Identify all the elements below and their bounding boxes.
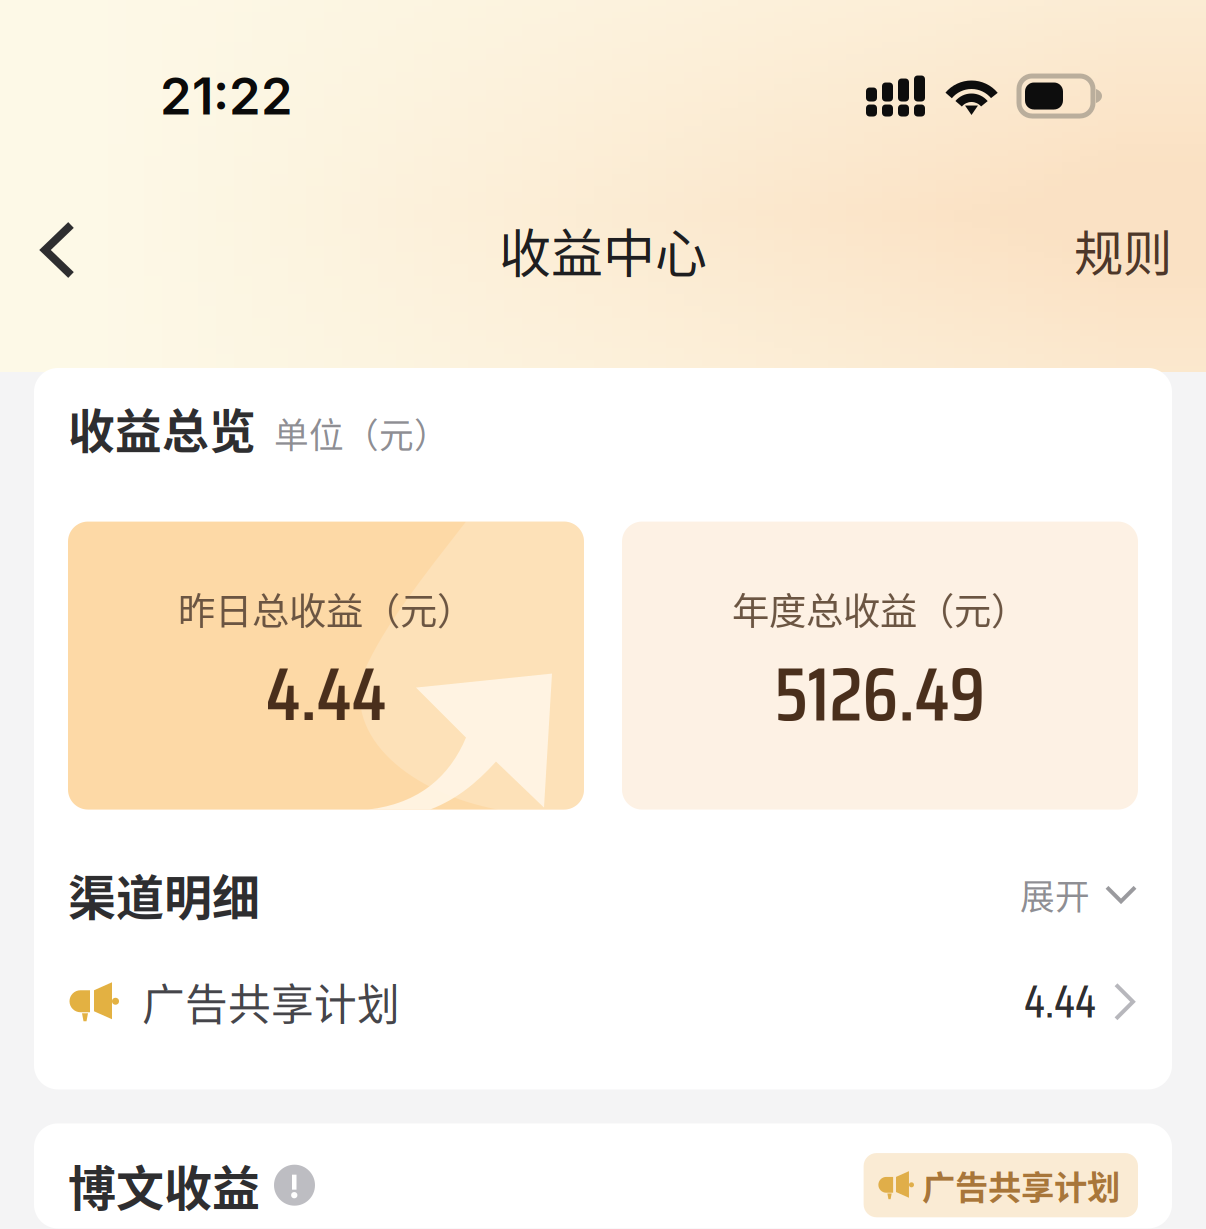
staticText: 规则	[1074, 214, 1172, 286]
staticText: 单位（元）	[274, 408, 449, 458]
staticText: 展开	[1020, 869, 1090, 919]
staticText: 4.44	[265, 636, 386, 753]
button[interactable]: 广告共享计划	[864, 1153, 1138, 1217]
button[interactable]: 广告共享计划	[34, 966, 1172, 1037]
staticText: 21:22	[160, 65, 293, 127]
staticText: 5126.49	[774, 636, 985, 753]
button[interactable]: 规则	[1032, 207, 1172, 293]
staticText: 年度总收益（元）	[732, 582, 1028, 636]
button[interactable]: Back	[6, 207, 110, 293]
staticText: 4.44	[1024, 966, 1096, 1037]
staticText: 广告共享计划	[142, 971, 400, 1033]
staticText: 收益中心	[499, 212, 707, 288]
staticText: 昨日总收益（元）	[178, 582, 474, 636]
staticText: 博文收益	[68, 1150, 260, 1220]
staticText: 渠道明细	[68, 860, 260, 929]
staticText: 收益总览	[68, 394, 256, 462]
button[interactable]: 渠道明细	[34, 860, 1172, 929]
staticText: 广告共享计划	[922, 1161, 1120, 1209]
